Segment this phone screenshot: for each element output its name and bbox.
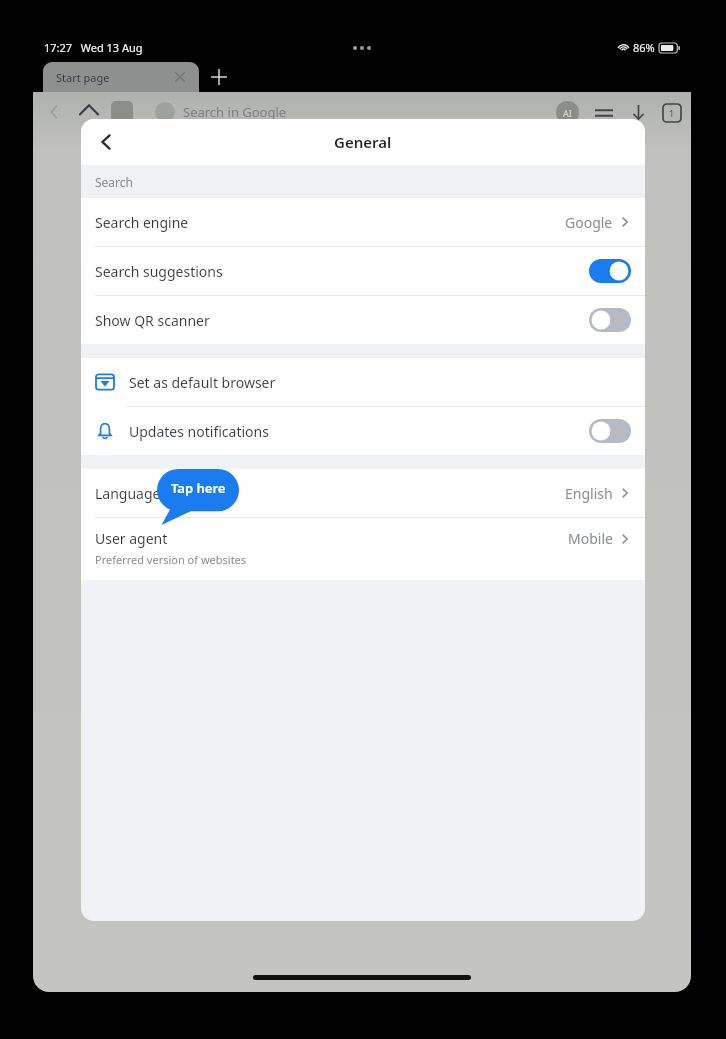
- button[interactable]: Set as default browser: [81, 358, 645, 406]
- button[interactable]: New tab: [211, 69, 227, 85]
- staticText: Tap here: [171, 479, 226, 497]
- staticText: Preferred version of websites: [95, 552, 247, 567]
- staticText: General: [334, 132, 392, 152]
- button[interactable]: Bookmarks: [111, 101, 133, 123]
- staticText: AI: [563, 107, 572, 119]
- staticText: 86%: [633, 40, 655, 55]
- button[interactable]: Menu: [594, 103, 614, 123]
- button[interactable]: Back: [44, 102, 64, 122]
- staticText: Mobile: [568, 529, 613, 548]
- staticText: Search in Google: [183, 103, 287, 121]
- staticText: Search suggestions: [95, 262, 223, 281]
- button[interactable]: AI assistant: [556, 101, 579, 124]
- staticText: Search: [95, 174, 133, 190]
- button[interactable]: Start page: [43, 62, 199, 92]
- staticText: Set as default browser: [129, 373, 276, 392]
- staticText: Updates notifications: [129, 422, 269, 441]
- button[interactable]: Home: [77, 100, 101, 124]
- button[interactable]: Search engine: [81, 198, 645, 246]
- staticText: Search engine: [95, 213, 189, 232]
- button[interactable]: Search suggestions: [81, 247, 645, 295]
- staticText: English: [565, 484, 613, 503]
- staticText: Language: [95, 484, 161, 503]
- button[interactable]: Back: [95, 131, 117, 153]
- button[interactable]: Updates notifications: [81, 407, 645, 455]
- button[interactable]: Show QR scanner: [81, 296, 645, 344]
- staticText: Show QR scanner: [95, 311, 210, 330]
- staticText: Start page: [56, 70, 110, 85]
- staticText: Google: [565, 213, 613, 232]
- button[interactable]: User agent: [81, 518, 645, 580]
- staticText: 1: [669, 107, 675, 119]
- staticText: 17:27 Wed 13 Aug: [44, 40, 143, 55]
- button[interactable]: Downloads: [629, 103, 648, 122]
- staticText: User agent: [95, 529, 168, 548]
- button[interactable]: Close tab: [174, 71, 186, 83]
- button[interactable]: Language: [81, 469, 645, 517]
- button[interactable]: Tabs: [663, 104, 681, 122]
